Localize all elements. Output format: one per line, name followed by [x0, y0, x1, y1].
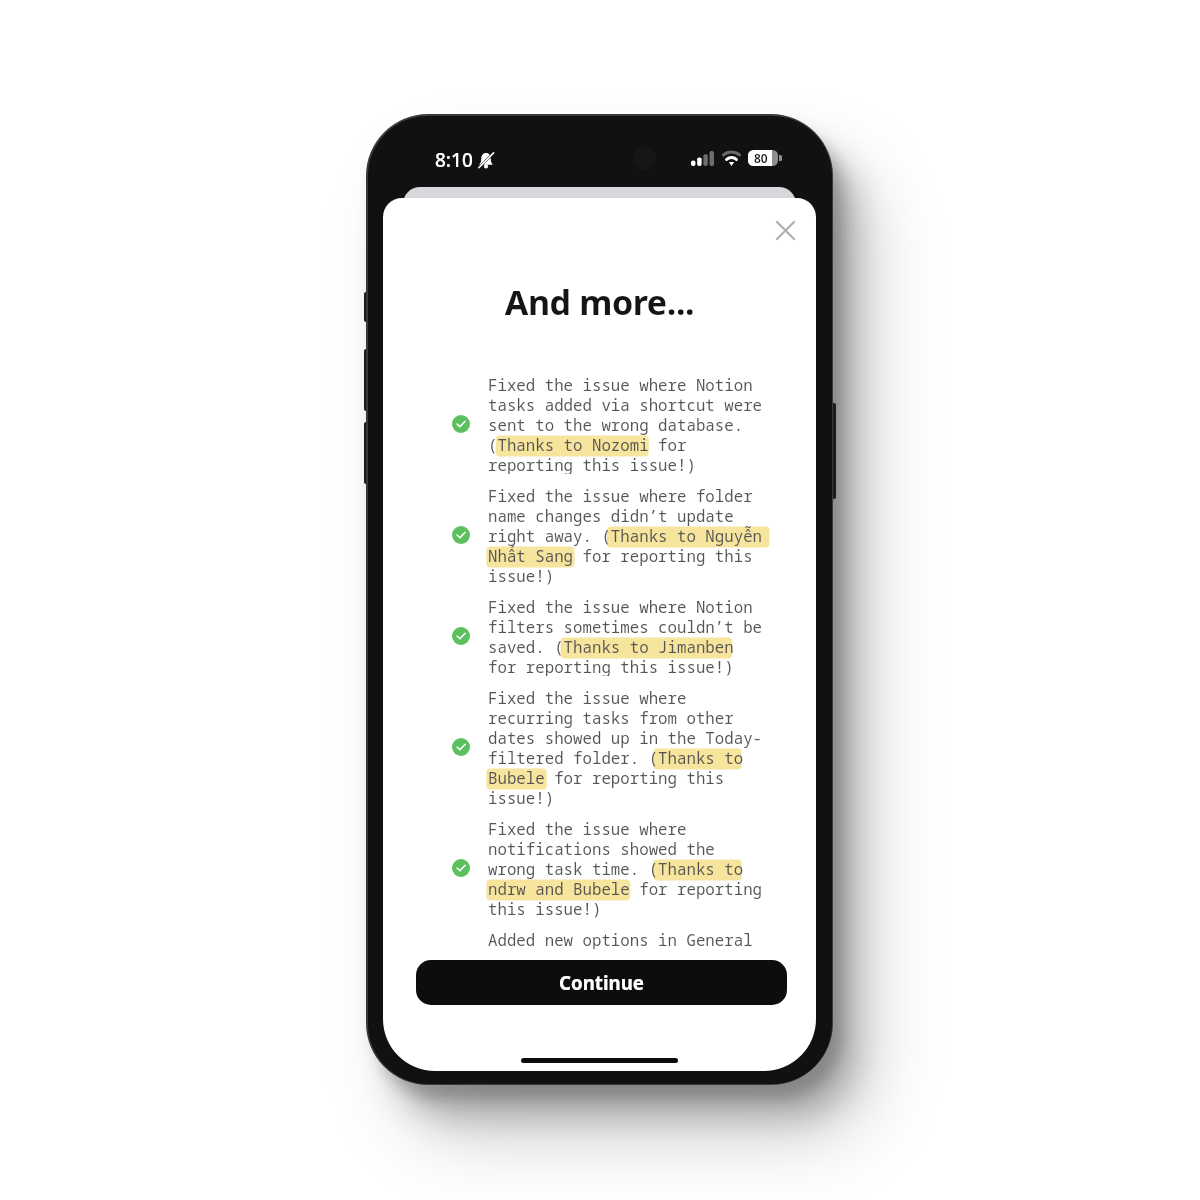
staticText: And more... [383, 279, 816, 325]
staticText: 80 [754, 150, 768, 166]
staticText: Fixed the issue where Notion tasks added… [488, 374, 763, 474]
staticText: Fixed the issue where Notion filters som… [488, 596, 763, 676]
staticText: Fixed the issue where recurring tasks fr… [488, 687, 763, 807]
staticText: Fixed the issue where folder name change… [488, 485, 763, 585]
staticText: Continue [559, 970, 644, 995]
staticText: 8:10 [435, 147, 473, 173]
button[interactable]: Continue [416, 960, 787, 1005]
staticText: Fixed the issue where notifications show… [488, 818, 763, 918]
staticText: Added new options in General [488, 929, 753, 949]
button[interactable]: Close [768, 213, 802, 247]
